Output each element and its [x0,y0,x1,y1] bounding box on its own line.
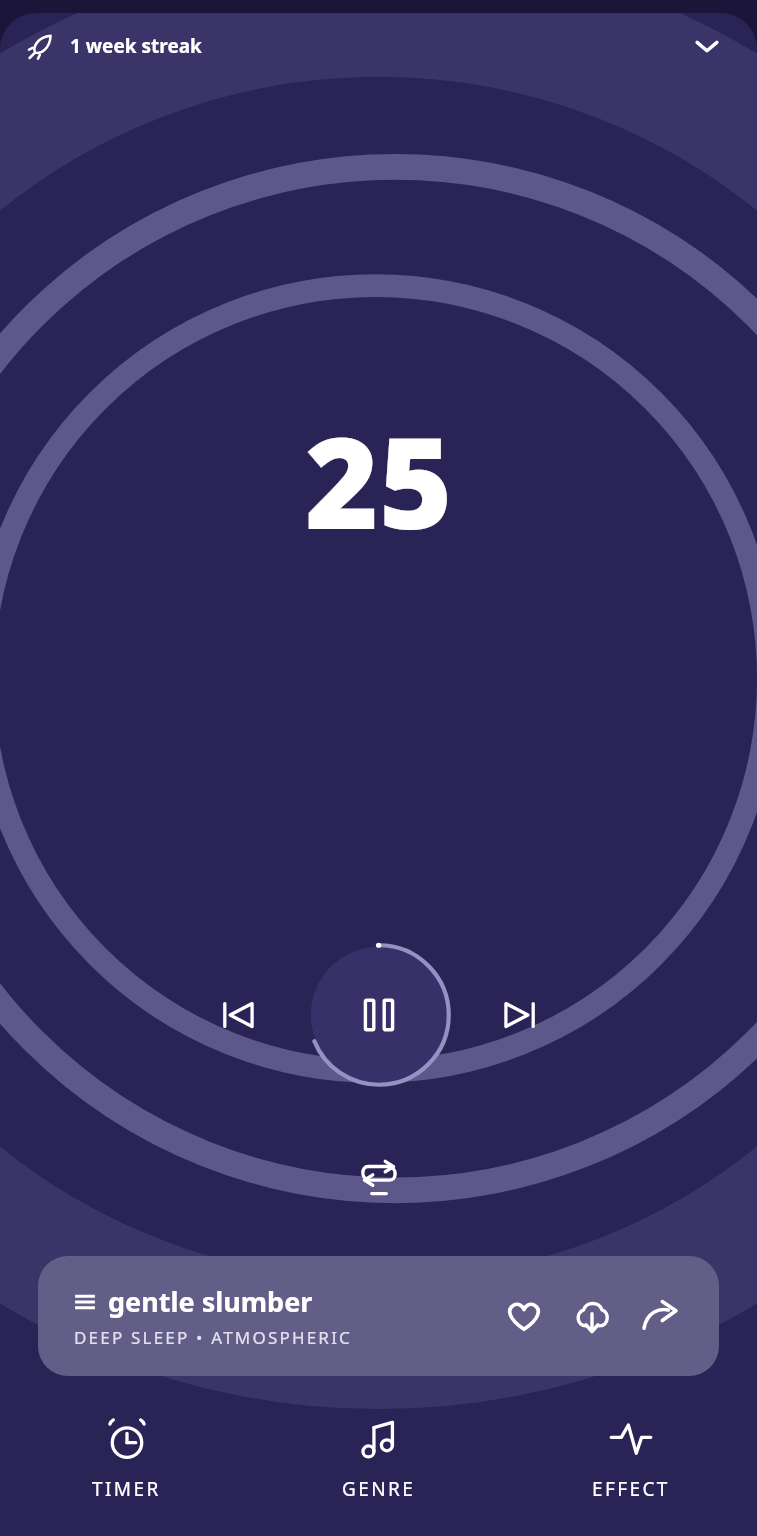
button[interactable]: GENRE [253,1400,505,1520]
button[interactable]: gentle slumber [38,1256,719,1376]
button[interactable]: Favourite [495,1287,553,1345]
staticText: GENRE [342,1476,416,1502]
staticText: 25 [305,394,453,566]
button[interactable]: Repeat [341,1140,417,1216]
button[interactable]: Download [563,1287,621,1345]
button[interactable]: Previous [198,975,278,1055]
button[interactable]: EFFECT [505,1400,757,1520]
button[interactable]: 1 week streak [22,27,206,65]
staticText: gentle slumber [108,1283,313,1320]
button[interactable]: Next [480,975,560,1055]
button[interactable]: TIMER [0,1400,253,1520]
button[interactable]: Collapse [683,22,731,70]
staticText: 1 week streak [70,33,202,59]
staticText: EFFECT [592,1476,670,1502]
button[interactable]: Pause [304,940,454,1090]
staticText: TIMER [92,1476,161,1502]
button[interactable]: Share [631,1287,689,1345]
staticText: DEEP SLEEP • ATMOSPHERIC [74,1326,353,1349]
